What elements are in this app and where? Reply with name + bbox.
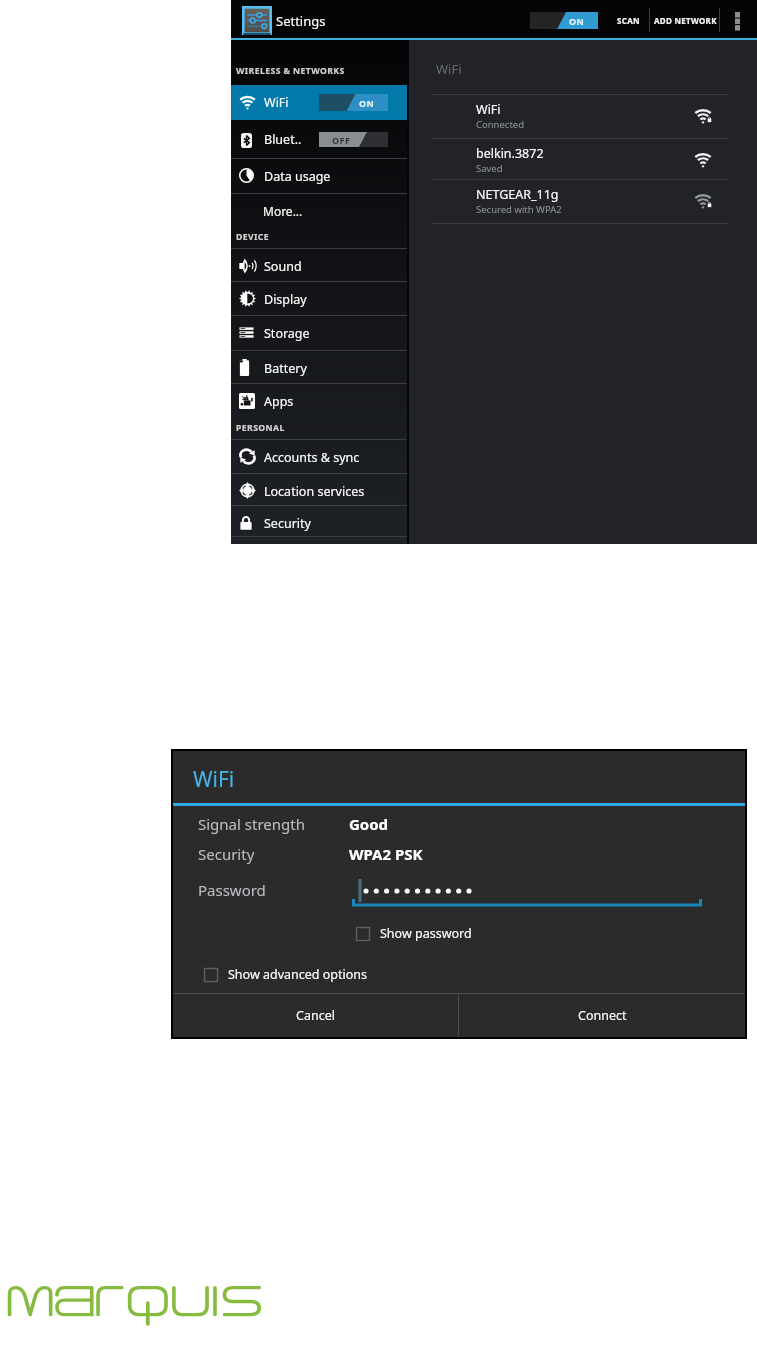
button[interactable]: Show advanced options: [204, 966, 368, 983]
staticText: OFF: [332, 134, 351, 146]
staticText: Security: [264, 515, 311, 532]
staticText: Location services: [264, 483, 365, 500]
button[interactable]: Apps: [231, 384, 407, 418]
staticText: SCAN: [617, 15, 640, 26]
staticText: belkin.3872: [476, 145, 544, 162]
staticText: Battery: [264, 360, 307, 377]
button[interactable]: ADD NETWORK: [652, 6, 718, 34]
button[interactable]: Security: [231, 506, 407, 540]
staticText: More...: [263, 203, 303, 219]
button[interactable]: Sound: [231, 249, 407, 283]
button[interactable]: OFF: [319, 132, 388, 147]
staticText: WiFi: [264, 94, 289, 111]
button[interactable]: Show password: [356, 925, 472, 942]
staticText: Settings: [276, 12, 326, 30]
button[interactable]: SCAN: [614, 6, 643, 34]
button[interactable]: Connect: [459, 994, 745, 1037]
staticText: Apps: [264, 393, 294, 410]
staticText: WiFi: [476, 101, 501, 118]
button[interactable]: Battery: [231, 351, 407, 385]
staticText: WPA2 PSK: [349, 844, 423, 864]
staticText: Accounts & sync: [264, 449, 360, 466]
staticText: Password: [198, 880, 266, 900]
staticText: Saved: [476, 162, 503, 175]
staticText: WiFi: [193, 765, 235, 794]
button[interactable]: WiFi: [409, 95, 757, 138]
staticText: PERSONAL: [236, 422, 285, 434]
staticText: WiFi: [436, 60, 462, 78]
button[interactable]: NETGEAR_11g: [409, 180, 757, 223]
staticText: Display: [264, 291, 307, 308]
staticText: Secured with WPA2: [476, 203, 562, 216]
button[interactable]: Storage: [231, 316, 407, 350]
staticText: WIRELESS & NETWORKS: [236, 65, 345, 77]
button[interactable]: Accounts & sync: [231, 440, 407, 474]
staticText: Data usage: [264, 168, 331, 185]
staticText: Good: [349, 814, 389, 834]
button[interactable]: Display: [231, 282, 407, 316]
button[interactable]: ON: [319, 94, 388, 111]
staticText: Connected: [476, 118, 525, 131]
staticText: ON: [359, 97, 375, 109]
staticText: Storage: [264, 325, 310, 342]
button[interactable]: More options: [726, 4, 748, 36]
button[interactable]: WiFi: [231, 85, 407, 120]
staticText: Sound: [264, 258, 302, 275]
button[interactable]: Cancel: [173, 994, 458, 1037]
staticText: ADD NETWORK: [654, 15, 717, 26]
staticText: DEVICE: [236, 231, 270, 243]
staticText: Connect: [578, 1007, 627, 1024]
button[interactable]: Bluet..: [231, 120, 407, 158]
staticText: Signal strength: [198, 814, 305, 834]
button[interactable]: Location services: [231, 474, 407, 508]
staticText: Show advanced options: [228, 966, 368, 983]
button[interactable]: Data usage: [231, 159, 407, 193]
staticText: Show password: [380, 925, 472, 942]
button[interactable]: ON: [530, 12, 598, 29]
staticText: Security: [198, 844, 255, 864]
button[interactable]: More...: [231, 194, 407, 228]
staticText: Cancel: [296, 1007, 335, 1024]
staticText: NETGEAR_11g: [476, 186, 559, 203]
staticText: Bluet..: [264, 131, 302, 148]
staticText: ON: [569, 15, 585, 27]
button[interactable]: belkin.3872: [409, 139, 757, 182]
